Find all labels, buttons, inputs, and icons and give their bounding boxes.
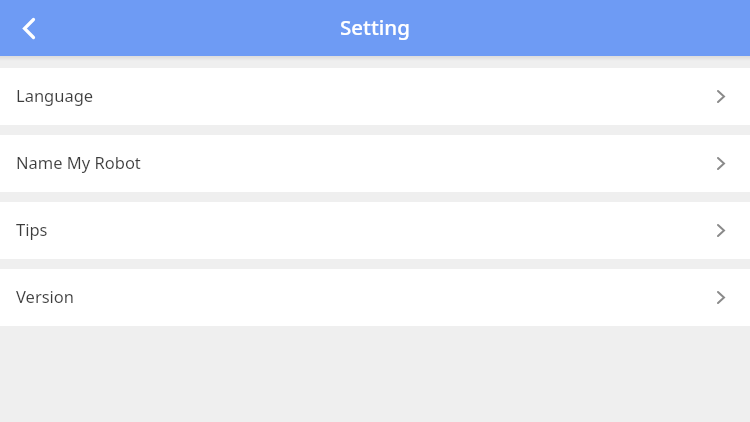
staticText: Setting xyxy=(340,13,410,41)
staticText: Language xyxy=(16,84,94,106)
button[interactable]: Tips xyxy=(0,202,750,259)
staticText: Version xyxy=(16,285,75,307)
button[interactable]: Name My Robot xyxy=(0,135,750,192)
button[interactable]: Version xyxy=(0,269,750,326)
button[interactable]: Back xyxy=(0,0,57,56)
staticText: Name My Robot xyxy=(16,151,141,173)
button[interactable]: Language xyxy=(0,68,750,125)
staticText: Tips xyxy=(16,218,48,240)
